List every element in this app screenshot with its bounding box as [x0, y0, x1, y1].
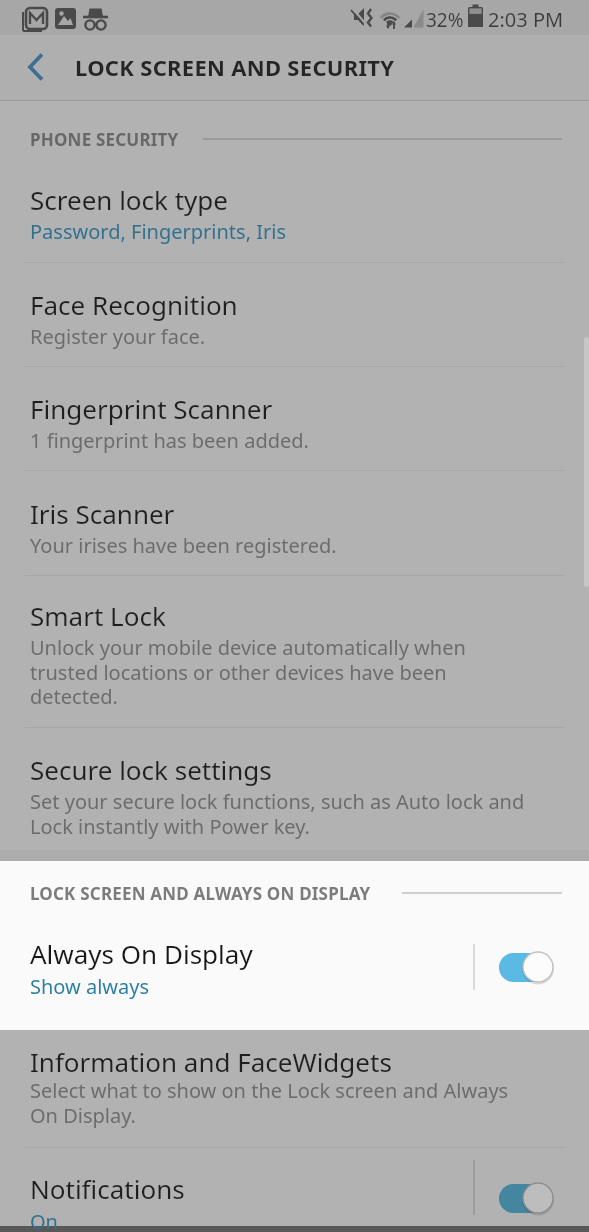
staticText: Unlock your mobile device automatically … [30, 634, 466, 710]
button[interactable] [499, 953, 553, 982]
staticText: Iris Scanner [30, 496, 175, 531]
staticText: Information and FaceWidgets [30, 1044, 392, 1079]
button[interactable] [25, 52, 49, 82]
staticText: Secure lock settings [30, 752, 272, 787]
staticText: Password, Fingerprints, Iris [30, 218, 286, 245]
staticText: On [30, 1208, 58, 1232]
staticText: Always On Display [30, 936, 253, 971]
button[interactable]: Smart Lock [0, 576, 589, 727]
staticText: PHONE SECURITY [30, 128, 179, 151]
staticText: 1 fingerprint has been added. [30, 427, 309, 454]
staticText: LOCK SCREEN AND ALWAYS ON DISPLAY [30, 882, 371, 905]
button[interactable]: Secure lock settings [0, 728, 589, 850]
staticText: Notifications [30, 1171, 185, 1206]
staticText: Screen lock type [30, 182, 228, 217]
button[interactable] [499, 1184, 553, 1213]
button[interactable]: Screen lock type [0, 160, 589, 262]
staticText: Set your secure lock functions, such as … [30, 788, 525, 840]
staticText: Register your face. [30, 323, 206, 350]
staticText: 32% [426, 7, 464, 33]
staticText: Face Recognition [30, 287, 238, 322]
staticText: Select what to show on the Lock screen a… [30, 1077, 509, 1129]
staticText: Fingerprint Scanner [30, 391, 273, 426]
staticText: Your irises have been registered. [30, 532, 337, 559]
button[interactable]: Notifications [0, 1148, 589, 1226]
staticText: 2:03 PM [488, 6, 564, 33]
button[interactable]: Iris Scanner [0, 471, 589, 575]
button[interactable]: Information and FaceWidgets [0, 1030, 589, 1147]
staticText: LOCK SCREEN AND SECURITY [75, 52, 395, 82]
staticText: Smart Lock [30, 598, 166, 633]
staticText: Show always [30, 973, 150, 1000]
button[interactable]: Fingerprint Scanner [0, 367, 589, 470]
button[interactable]: Face Recognition [0, 263, 589, 366]
button[interactable]: Always On Display [0, 914, 589, 1030]
